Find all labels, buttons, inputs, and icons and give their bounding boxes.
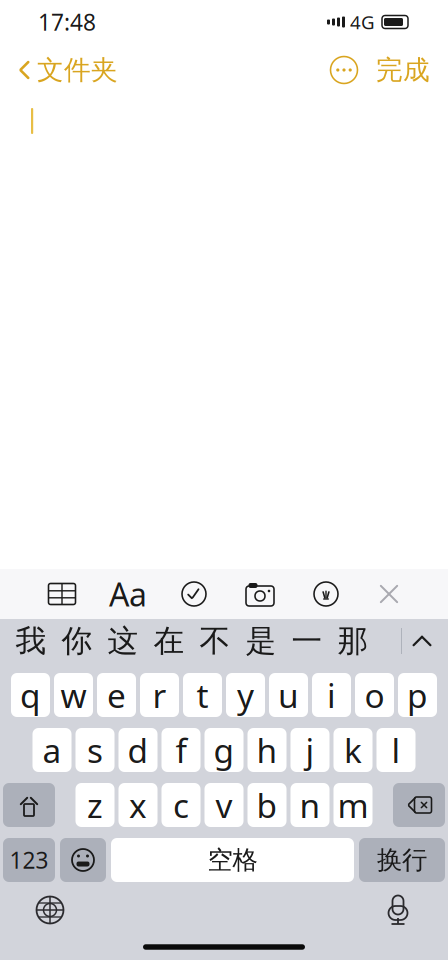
button[interactable]: 是 xyxy=(238,619,284,663)
staticText: 在 xyxy=(153,622,184,660)
staticText: 换行 xyxy=(377,844,427,875)
button[interactable]: 换行 xyxy=(359,838,445,882)
button[interactable]: y xyxy=(226,673,265,717)
button[interactable]: s xyxy=(75,728,114,772)
button[interactable]: Delete xyxy=(393,783,445,827)
staticText: 完成 xyxy=(376,54,430,86)
staticText: j xyxy=(305,728,314,772)
staticText: r xyxy=(152,673,166,717)
button[interactable]: e xyxy=(97,673,136,717)
button[interactable]: x xyxy=(118,783,157,827)
button[interactable]: i xyxy=(312,673,351,717)
staticText: 4G xyxy=(350,10,375,34)
button[interactable]: Emoji xyxy=(60,838,106,882)
button[interactable]: Markup xyxy=(298,569,354,619)
staticText: d xyxy=(127,728,148,772)
button[interactable]: 那 xyxy=(330,619,376,663)
button[interactable]: 123 xyxy=(3,838,55,882)
button[interactable]: Close xyxy=(364,569,414,619)
button[interactable]: Format xyxy=(100,569,156,619)
button[interactable]: Camera xyxy=(232,569,288,619)
button[interactable]: q xyxy=(11,673,50,717)
button[interactable]: v xyxy=(204,783,243,827)
button[interactable]: h xyxy=(247,728,286,772)
button[interactable]: u xyxy=(269,673,308,717)
button[interactable]: Next keyboard xyxy=(22,886,78,934)
button[interactable]: 文件夹 xyxy=(14,46,122,94)
button[interactable]: p xyxy=(398,673,437,717)
button[interactable]: c xyxy=(161,783,200,827)
button[interactable]: f xyxy=(161,728,200,772)
staticText: u xyxy=(278,673,299,717)
button[interactable]: 一 xyxy=(284,619,330,663)
button[interactable]: 我 xyxy=(8,619,54,663)
button[interactable]: Checklist xyxy=(166,569,222,619)
staticText: 这 xyxy=(107,622,138,660)
button[interactable]: z xyxy=(75,783,114,827)
staticText: b xyxy=(256,783,277,827)
staticText: p xyxy=(407,673,428,717)
button[interactable]: 在 xyxy=(146,619,192,663)
staticText: y xyxy=(237,673,254,717)
staticText: o xyxy=(364,673,384,717)
button[interactable]: Shift xyxy=(3,783,55,827)
button[interactable]: Dictation xyxy=(370,886,426,934)
button[interactable]: j xyxy=(290,728,329,772)
button[interactable]: a xyxy=(32,728,71,772)
button[interactable]: w xyxy=(54,673,93,717)
button[interactable]: r xyxy=(140,673,179,717)
staticText: Aa xyxy=(109,573,147,615)
staticText: 是 xyxy=(245,622,276,660)
staticText: h xyxy=(256,728,277,772)
staticText: e xyxy=(107,673,126,717)
staticText: i xyxy=(327,673,336,717)
staticText: 17:48 xyxy=(38,7,96,37)
staticText: a xyxy=(42,728,61,772)
staticText: q xyxy=(20,673,41,717)
staticText: 文件夹 xyxy=(37,54,118,86)
button[interactable]: d xyxy=(118,728,157,772)
staticText: m xyxy=(337,783,368,827)
button[interactable]: Hide candidates xyxy=(402,619,442,663)
button[interactable]: More xyxy=(324,50,364,90)
staticText: z xyxy=(87,783,103,827)
staticText: v xyxy=(215,783,232,827)
button[interactable]: 不 xyxy=(192,619,238,663)
staticText: 一 xyxy=(291,622,322,660)
staticText: 空格 xyxy=(207,844,257,875)
staticText: 你 xyxy=(61,622,92,660)
button[interactable]: b xyxy=(247,783,286,827)
staticText: 123 xyxy=(9,845,48,875)
button[interactable]: 完成 xyxy=(364,46,434,94)
staticText: f xyxy=(175,728,186,772)
staticText: s xyxy=(87,728,103,772)
staticText: g xyxy=(213,728,234,772)
staticText: 那 xyxy=(337,622,368,660)
button[interactable]: 这 xyxy=(100,619,146,663)
button[interactable]: k xyxy=(333,728,372,772)
button[interactable]: n xyxy=(290,783,329,827)
staticText: t xyxy=(196,673,208,717)
button[interactable]: m xyxy=(333,783,372,827)
button[interactable]: g xyxy=(204,728,243,772)
staticText: c xyxy=(173,783,189,827)
staticText: 我 xyxy=(15,622,46,660)
button[interactable]: 空格 xyxy=(111,838,354,882)
staticText: k xyxy=(344,728,362,772)
button[interactable]: o xyxy=(355,673,394,717)
staticText: l xyxy=(391,728,400,772)
staticText: n xyxy=(299,783,320,827)
staticText: x xyxy=(129,783,147,827)
button[interactable]: t xyxy=(183,673,222,717)
staticText: 不 xyxy=(199,622,230,660)
staticText: w xyxy=(60,673,86,717)
button[interactable]: 你 xyxy=(54,619,100,663)
button[interactable]: l xyxy=(376,728,415,772)
button[interactable]: Table xyxy=(34,569,90,619)
